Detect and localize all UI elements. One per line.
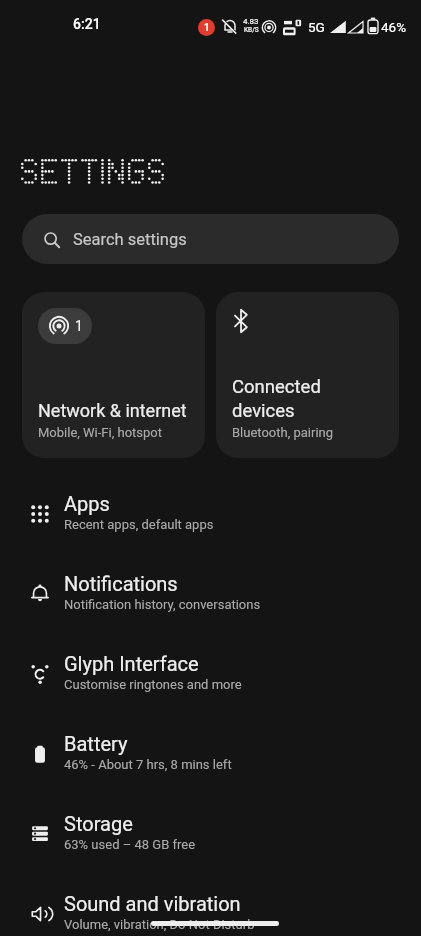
staticText: 5G bbox=[308, 19, 325, 35]
staticText: Search settings bbox=[73, 230, 187, 249]
staticText: 4.83 bbox=[243, 17, 259, 26]
staticText: Bluetooth, pairing bbox=[232, 425, 334, 440]
button[interactable]: 1 bbox=[22, 292, 205, 458]
staticText: 63% used – 48 GB free bbox=[64, 837, 196, 852]
staticText: KB/S bbox=[244, 26, 259, 34]
staticText: Sound and vibration bbox=[64, 892, 241, 915]
staticText: 1 bbox=[75, 318, 83, 334]
button[interactable]: Sound and vibration bbox=[0, 874, 421, 936]
staticText: 6:21 bbox=[73, 16, 101, 32]
staticText: Customise ringtones and more bbox=[64, 677, 242, 692]
staticText: Notifications bbox=[64, 572, 178, 595]
staticText: Apps bbox=[64, 492, 110, 515]
button[interactable]: Battery bbox=[0, 714, 421, 794]
button[interactable]: Apps bbox=[0, 474, 421, 554]
staticText: 1 bbox=[204, 22, 210, 34]
button[interactable]: Storage bbox=[0, 794, 421, 874]
staticText: Battery bbox=[64, 732, 128, 755]
staticText: Connected devices bbox=[232, 376, 321, 421]
staticText: Network & internet bbox=[38, 400, 187, 421]
staticText: Glyph Interface bbox=[64, 652, 199, 675]
staticText: Volume, vibration, Do Not Disturb bbox=[64, 917, 255, 932]
button[interactable]: Connected devices bbox=[216, 292, 399, 458]
button[interactable]: Notifications bbox=[0, 554, 421, 634]
button[interactable]: Search settings bbox=[22, 214, 399, 264]
staticText: Recent apps, default apps bbox=[64, 517, 214, 532]
staticText: Storage bbox=[64, 812, 133, 835]
staticText: Mobile, Wi-Fi, hotspot bbox=[38, 425, 162, 440]
staticText: 46% - About 7 hrs, 8 mins left bbox=[64, 757, 232, 772]
button[interactable]: Glyph Interface bbox=[0, 634, 421, 714]
staticText: 46% bbox=[381, 19, 407, 35]
staticText: Notification history, conversations bbox=[64, 597, 261, 612]
